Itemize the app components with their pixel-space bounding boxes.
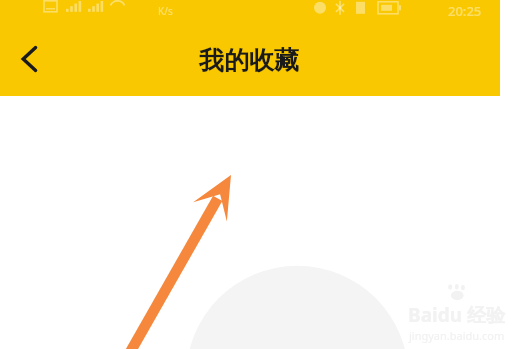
staticText: 20:25 bbox=[448, 2, 482, 20]
button[interactable]: Back bbox=[6, 35, 54, 83]
staticText: Baidu 经验 bbox=[408, 302, 505, 328]
staticText: 我的收藏 bbox=[199, 45, 299, 76]
staticText: K/s bbox=[158, 4, 173, 18]
staticText: jingyan.baidu.com bbox=[409, 328, 505, 343]
